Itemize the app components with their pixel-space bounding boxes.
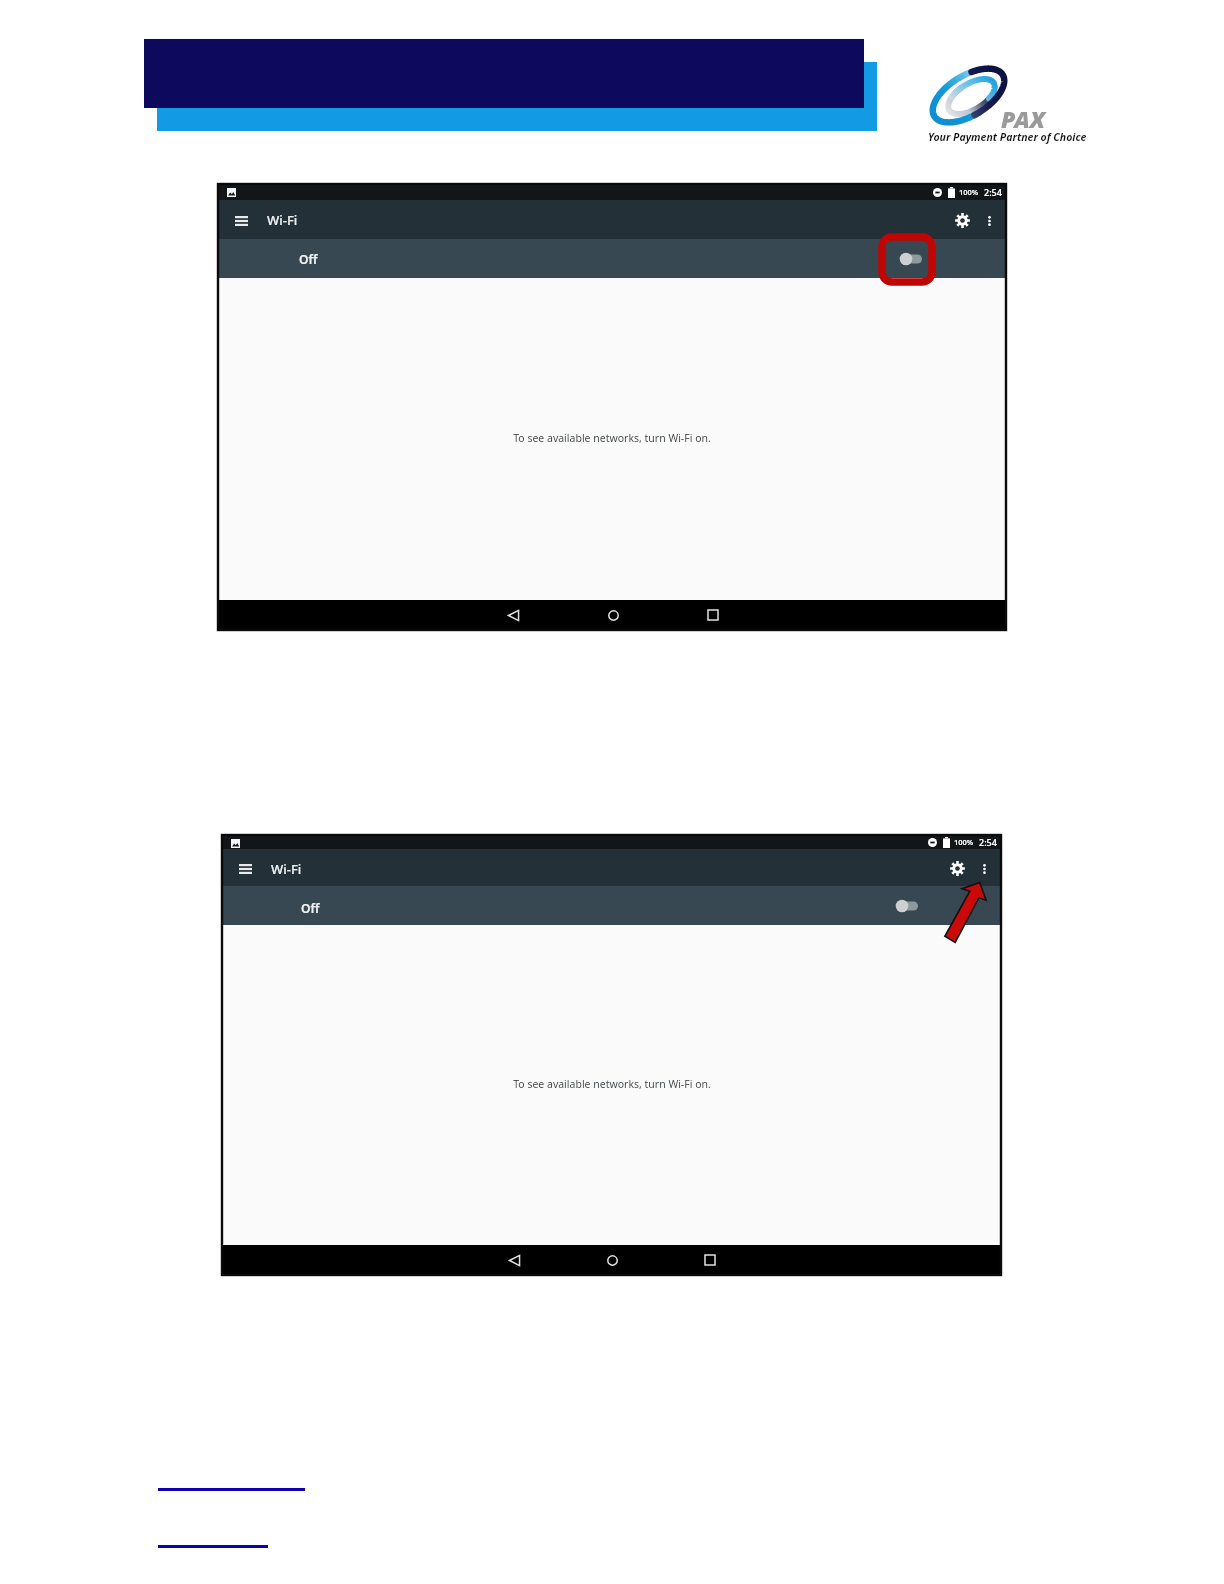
button[interactable]: Reference link 1 [158, 1474, 305, 1491]
staticText: Off [299, 251, 318, 267]
staticText: 2:54 [984, 186, 1002, 198]
button[interactable]: Wi-Fi on/off switch [894, 897, 926, 915]
staticText: Your Payment Partner of Choice [928, 130, 1088, 144]
button[interactable]: Reference link 2 [158, 1531, 268, 1548]
staticText: Wi-Fi [271, 860, 302, 878]
button[interactable]: Home [598, 600, 628, 630]
button[interactable]: Back [499, 1245, 529, 1275]
button[interactable]: Recent apps [698, 600, 728, 630]
button[interactable]: Settings [943, 854, 971, 882]
button[interactable]: Open navigation menu [226, 201, 256, 240]
staticText: To see available networks, turn Wi-Fi on… [513, 431, 711, 445]
staticText: 100% [954, 837, 974, 847]
staticText: 2:54 [979, 836, 997, 848]
staticText: 100% [959, 187, 979, 197]
staticText: To see available networks, turn Wi-Fi on… [513, 1077, 711, 1091]
button[interactable]: Settings [948, 206, 976, 234]
button[interactable]: Home [597, 1245, 627, 1275]
staticText: PAX [1001, 103, 1101, 134]
staticText: Wi-Fi [267, 211, 298, 229]
button[interactable]: More options [972, 857, 996, 881]
button[interactable]: Off [222, 886, 1001, 925]
staticText: Off [301, 900, 320, 916]
button[interactable]: Off [218, 239, 1006, 278]
button[interactable]: Wi-Fi on/off switch [898, 250, 930, 268]
button[interactable]: Back [498, 600, 528, 630]
button[interactable]: Recent apps [695, 1245, 725, 1275]
button[interactable]: More options [977, 209, 1001, 233]
button[interactable]: Open navigation menu [230, 850, 260, 887]
